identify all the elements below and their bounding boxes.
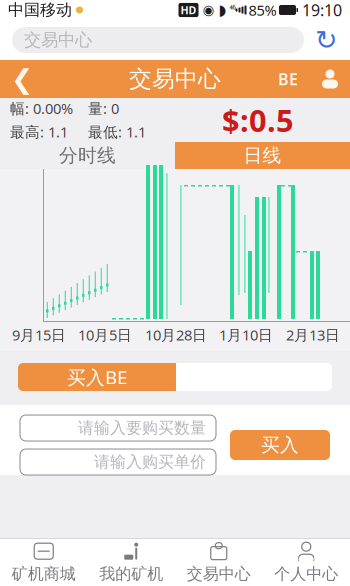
staticText: 个人中心 [274,564,338,584]
button[interactable]: 日线 [175,142,350,169]
button[interactable]: 买入 [230,430,330,460]
button[interactable]: 我的矿机 [87,539,175,586]
staticText: 请输入要购买数量 [78,418,206,438]
staticText: 日线 [243,144,281,167]
staticText: 19:10 [302,0,342,21]
button[interactable]: Back [0,60,44,98]
staticText: ❮ [11,64,33,94]
button[interactable]: Account [310,60,350,98]
staticText: ↻ [315,25,337,55]
button[interactable]: 矿机商城 [0,539,87,586]
button[interactable]: 交易中心 [12,27,304,53]
staticText: 矿机商城 [12,564,76,584]
staticText: BE [278,68,298,90]
staticText: 85% [248,0,276,20]
button[interactable]: 交易中心 [175,539,262,586]
staticText: 请输入购买单价 [94,452,206,472]
staticText: 幅: 0.00% [10,98,73,118]
button[interactable]: Refresh [314,27,338,53]
button[interactable]: 个人中心 [262,539,350,586]
staticText: 交易中心 [24,29,92,51]
staticText: 1月10日 [219,325,273,344]
staticText: ⁴⁶ [229,4,235,16]
staticText: 最低: 1.1 [88,122,146,141]
button[interactable]: BE [266,60,310,98]
staticText: 量: 0 [88,98,119,118]
staticText: 交易中心 [129,65,221,93]
staticText: 9月15日 [12,325,66,344]
staticText: ◗ [218,2,226,18]
button[interactable]: 分时线 [0,142,175,169]
staticText: 买入 [261,433,299,456]
button[interactable]: 买入BE [18,363,332,391]
staticText: $:0.5 [222,100,294,140]
button[interactable]: 请输入要购买数量 [20,415,216,441]
staticText: 分时线 [59,144,116,167]
staticText: ◉ [202,2,214,17]
button[interactable]: 请输入购买单价 [20,449,216,475]
staticText: 10月28日 [145,325,207,344]
staticText: 中国移动 [8,0,72,20]
staticText: 我的矿机 [99,564,163,584]
staticText: 10月5日 [78,325,132,344]
staticText: 2月13日 [286,325,340,344]
staticText: 最高: 1.1 [10,122,68,141]
staticText: HD [180,3,196,17]
staticText: 交易中心 [187,564,251,584]
staticText: 买入BE [67,365,127,389]
